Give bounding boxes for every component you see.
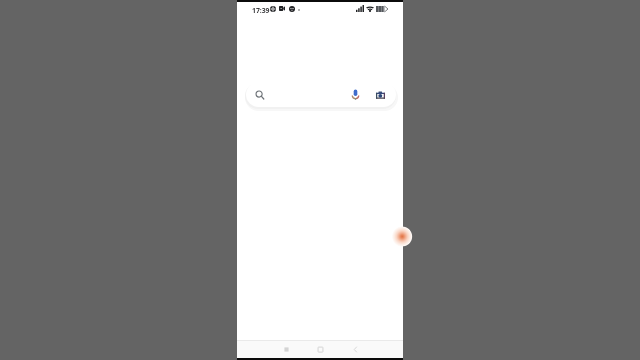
button[interactable]: Assistant — [390, 226, 411, 247]
button[interactable]: Google Lens — [375, 89, 386, 101]
button[interactable]: Recent apps — [272, 341, 300, 358]
button[interactable]: Voice search — [246, 82, 396, 107]
button[interactable]: Home — [306, 341, 334, 358]
button[interactable]: Voice search — [352, 89, 359, 101]
staticText: 17:39 — [252, 6, 270, 15]
